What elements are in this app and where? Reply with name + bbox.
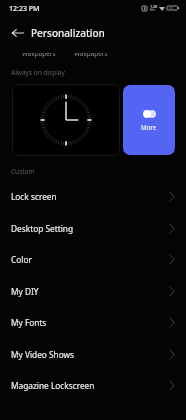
button[interactable]: Lock screen xyxy=(0,180,186,212)
staticText: Personalization xyxy=(31,26,105,40)
button[interactable]: Magazine Lockscreen xyxy=(0,369,186,401)
staticText: More xyxy=(141,123,157,131)
button[interactable]: Wallpapers xyxy=(74,49,108,58)
staticText: Always on display xyxy=(11,68,65,77)
button[interactable]: Desktop Setting xyxy=(0,212,186,244)
button[interactable]: More xyxy=(123,85,175,155)
button[interactable]: Back xyxy=(6,21,30,45)
staticText: Magazine Lockscreen xyxy=(11,380,95,391)
button[interactable]: My Video Shows xyxy=(0,338,186,370)
staticText: Desktop Setting xyxy=(11,223,74,234)
staticText: Color xyxy=(11,254,32,265)
staticText: My Video Shows xyxy=(11,349,75,360)
staticText: Lock screen xyxy=(11,191,57,202)
staticText: Custom xyxy=(11,167,35,176)
button[interactable]: My Fonts xyxy=(0,306,186,338)
staticText: 1.28 xyxy=(150,4,158,9)
staticText: 12:23 PM xyxy=(9,4,40,14)
button[interactable]: My DIY xyxy=(0,275,186,307)
button[interactable] xyxy=(12,84,120,156)
staticText: K/s xyxy=(150,8,155,12)
staticText: My Fonts xyxy=(11,317,47,328)
staticText: My DIY xyxy=(11,286,39,297)
button[interactable]: Wallpapers xyxy=(22,49,56,58)
button[interactable]: Color xyxy=(0,243,186,275)
